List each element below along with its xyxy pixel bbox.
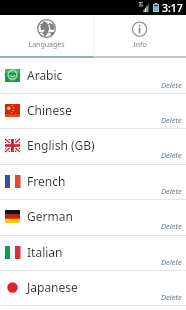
other: Battery (153, 3, 159, 12)
button[interactable]: Japanese (0, 271, 186, 306)
staticText: German (27, 208, 73, 224)
button[interactable]: Delete (161, 221, 182, 231)
button[interactable]: German (0, 200, 186, 236)
button[interactable]: French (0, 165, 186, 200)
button[interactable]: English (GB) (0, 129, 186, 165)
button[interactable]: Info (93, 15, 186, 59)
button[interactable]: Italian (0, 236, 186, 271)
other: Mobile signal (139, 2, 148, 12)
staticText: Chinese (27, 102, 72, 118)
button[interactable]: Delete (161, 80, 182, 90)
button[interactable]: Delete (161, 115, 182, 125)
button[interactable]: Delete (161, 257, 182, 267)
button[interactable]: Arabic (0, 59, 186, 94)
staticText: Info (133, 40, 147, 50)
staticText: Japanese (27, 279, 78, 295)
staticText: Arabic (27, 67, 63, 83)
button[interactable]: Delete (161, 186, 182, 196)
staticText: 3:17 (162, 1, 183, 15)
button[interactable]: Delete (161, 150, 182, 160)
button[interactable]: Languages (0, 15, 93, 59)
staticText: French (27, 173, 66, 189)
button[interactable]: Chinese (0, 94, 186, 129)
staticText: Languages (28, 40, 65, 50)
button[interactable]: Delete (161, 292, 182, 302)
staticText: Italian (27, 244, 63, 260)
staticText: English (GB) (27, 137, 95, 153)
